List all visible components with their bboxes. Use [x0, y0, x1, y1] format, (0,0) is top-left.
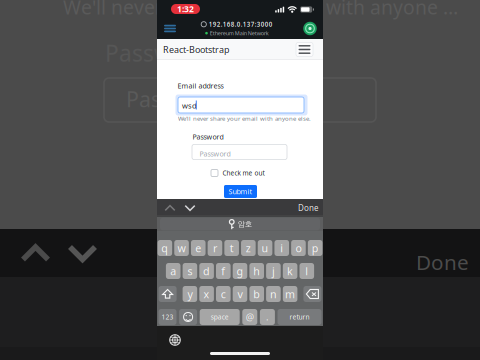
button[interactable]: h: [249, 263, 264, 279]
staticText: wsd: [182, 100, 197, 111]
button[interactable]: e: [191, 240, 206, 256]
button[interactable]: d: [199, 263, 214, 279]
staticText: Password: [126, 84, 222, 114]
staticText: Password: [192, 132, 223, 142]
button[interactable]: Delete: [303, 286, 321, 302]
staticText: React-Bootstrap: [163, 43, 229, 56]
staticText: f: [221, 264, 225, 278]
staticText: g: [236, 264, 243, 278]
staticText: i: [280, 241, 283, 255]
button[interactable]: Previous field: [160, 199, 180, 217]
button[interactable]: t: [224, 240, 239, 256]
button[interactable]: u: [258, 240, 272, 256]
staticText: Ethereum Main Network: [210, 29, 269, 37]
staticText: w: [178, 241, 186, 255]
button[interactable]: b: [249, 286, 264, 302]
staticText: x: [204, 287, 210, 301]
button[interactable]: m: [283, 286, 297, 302]
button[interactable]: z: [241, 240, 256, 256]
button[interactable]: g: [233, 263, 247, 279]
staticText: 123: [161, 313, 173, 321]
staticText: e: [195, 241, 201, 255]
button[interactable]: .: [260, 309, 275, 325]
staticText: Submit: [228, 187, 252, 196]
staticText: k: [287, 264, 293, 278]
staticText: s: [187, 264, 192, 278]
button[interactable]: Open wallet: [299, 18, 321, 39]
staticText: n: [270, 287, 277, 301]
button[interactable]: v: [233, 286, 247, 302]
button[interactable]: return: [277, 309, 321, 325]
staticText: t: [230, 241, 234, 255]
button[interactable]: Emoji: [179, 309, 197, 325]
staticText: 192.168.0.137:3000: [209, 20, 273, 28]
button[interactable]: x: [199, 286, 214, 302]
button[interactable]: Done: [295, 199, 322, 217]
button[interactable]: y: [183, 286, 197, 302]
staticText: d: [203, 264, 210, 278]
button[interactable]: Check me out: [211, 167, 264, 178]
staticText: o: [295, 241, 301, 255]
staticText: Password: [105, 38, 209, 68]
button[interactable]: Submit: [224, 185, 257, 198]
button[interactable]: n: [266, 286, 281, 302]
staticText: q: [161, 241, 168, 255]
staticText: return: [289, 313, 309, 321]
button[interactable]: c: [216, 286, 231, 302]
staticText: Check me out: [222, 169, 264, 177]
button[interactable]: @: [242, 309, 257, 325]
staticText: h: [253, 264, 260, 278]
button[interactable]: space: [200, 309, 240, 325]
staticText: Done: [416, 248, 469, 276]
button[interactable]: 123: [158, 309, 176, 325]
button[interactable]: Browser menu: [159, 18, 181, 39]
button[interactable]: p: [308, 240, 322, 256]
staticText: 암호: [238, 219, 252, 229]
staticText: z: [246, 241, 251, 255]
button[interactable]: w: [174, 240, 189, 256]
staticText: m: [285, 287, 295, 301]
button[interactable]: r: [208, 240, 222, 256]
staticText: c: [221, 287, 226, 301]
button[interactable]: Toggle navigation: [296, 42, 313, 56]
button[interactable]: Change keyboard: [165, 331, 185, 349]
staticText: Password: [199, 149, 230, 159]
staticText: @: [246, 311, 254, 323]
button[interactable]: Next field: [180, 199, 200, 217]
staticText: Done: [298, 203, 319, 213]
staticText: We'll never share your email with anyone…: [178, 114, 311, 123]
staticText: r: [213, 241, 217, 255]
staticText: p: [312, 241, 319, 255]
button[interactable]: a: [166, 263, 180, 279]
button[interactable]: s: [183, 263, 197, 279]
button[interactable]: k: [283, 263, 297, 279]
button[interactable]: i: [274, 240, 289, 256]
staticText: u: [262, 241, 269, 255]
staticText: y: [187, 287, 192, 301]
staticText: b: [253, 287, 260, 301]
button[interactable]: f: [216, 263, 231, 279]
staticText: l: [305, 264, 308, 278]
staticText: We'll never share your email with anyone…: [63, 0, 463, 20]
button[interactable]: Shift: [159, 286, 177, 302]
staticText: 1:32: [177, 3, 194, 15]
button[interactable]: o: [291, 240, 306, 256]
staticText: space: [211, 313, 229, 321]
button[interactable]: q: [158, 240, 172, 256]
staticText: j: [272, 264, 275, 278]
button[interactable]: 암호: [160, 218, 320, 230]
staticText: a: [170, 264, 176, 278]
staticText: Email address: [177, 81, 223, 91]
staticText: .: [266, 311, 269, 323]
button[interactable]: l: [299, 263, 314, 279]
staticText: v: [237, 287, 242, 301]
button[interactable]: j: [266, 263, 281, 279]
